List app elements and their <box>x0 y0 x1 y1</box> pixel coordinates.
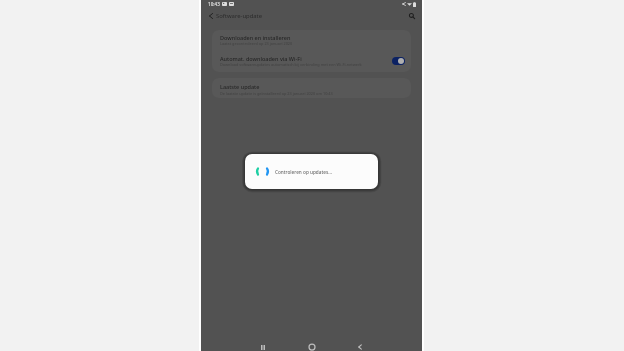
staticText: Download softwareupdates automatisch bij… <box>220 62 390 67</box>
staticText: Controleren op updates... <box>275 169 333 175</box>
button[interactable]: Search <box>403 7 421 24</box>
staticText: Downloaden en installeren <box>220 34 291 41</box>
staticText: Laatst gecontroleerd op 23 januari 2020 <box>220 41 293 46</box>
staticText: De laatste update is geïnstalleerd op 23… <box>220 91 333 96</box>
staticText: 10:43 <box>208 1 220 7</box>
button[interactable]: Back <box>351 338 369 351</box>
button[interactable]: Automat. downloaden via Wi-Fi <box>212 51 411 72</box>
button[interactable]: Recent apps <box>254 338 272 351</box>
staticText: Automat. downloaden via Wi-Fi <box>220 55 302 62</box>
button[interactable]: Navigate up <box>203 7 219 24</box>
button[interactable]: Automatisch downloaden via Wi-Fi <box>392 57 405 65</box>
button[interactable]: Downloaden en installeren <box>212 30 411 51</box>
staticText: Laatste update <box>220 83 260 90</box>
staticText: Software-update <box>216 12 263 20</box>
button[interactable]: Laatste update <box>212 78 411 98</box>
button[interactable]: Home <box>303 338 321 351</box>
